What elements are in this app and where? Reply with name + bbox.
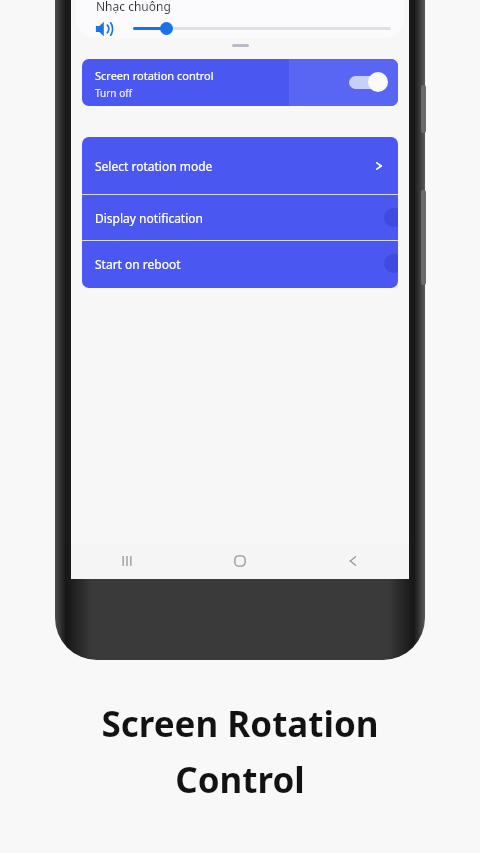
staticText: Screen Rotation Control	[81, 8, 283, 31]
button[interactable]: Home	[183, 543, 296, 579]
button[interactable]: Select rotation mode	[82, 137, 398, 194]
button[interactable]: Start on reboot	[82, 241, 398, 286]
staticText: Display notification	[95, 210, 203, 226]
staticText: Screen rotation control	[95, 68, 214, 83]
staticText: Screen Rotation	[101, 700, 379, 748]
staticText: Start on reboot	[95, 256, 181, 272]
button[interactable]: Back	[296, 543, 409, 579]
staticText: Control	[175, 756, 305, 804]
staticText: Turn off	[95, 86, 133, 100]
button[interactable]: Display notification	[82, 195, 398, 240]
button[interactable]: Screen rotation control	[82, 59, 398, 106]
staticText: Select rotation mode	[95, 158, 213, 174]
staticText: Nhạc chuông	[96, 0, 171, 14]
button[interactable]: Recent apps	[71, 543, 183, 579]
